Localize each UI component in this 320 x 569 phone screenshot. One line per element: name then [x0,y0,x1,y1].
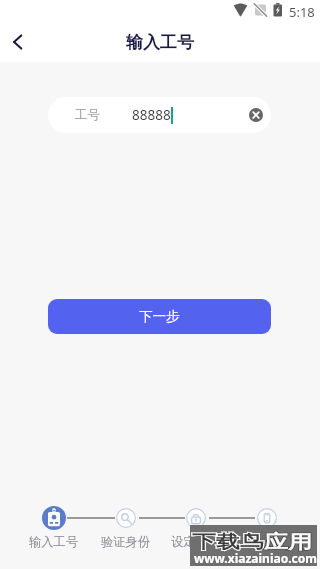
staticText: 应用 [264,531,312,553]
staticText: www.xiazainiao.com [194,550,317,566]
staticText: 工号 [75,107,100,123]
staticText: 88888 [132,106,171,124]
button[interactable]: Clear text [249,108,263,122]
button[interactable]: 工号 [48,97,271,133]
staticText: 下一步 [139,308,180,325]
staticText: 下载鸟 [192,531,264,553]
button[interactable]: 完成 [231,506,301,551]
staticText: 输入工号 [29,534,79,549]
button[interactable]: 输入工号 [19,506,89,551]
staticText: 验证身份 [101,534,151,549]
staticText: 设定密码 [171,534,221,549]
button[interactable]: 设定密码 [161,506,231,551]
staticText: 应用 [264,531,312,553]
staticText: 完成 [254,534,279,549]
button[interactable]: Back [4,29,30,55]
button[interactable]: 验证身份 [91,506,161,551]
staticText: 输入工号 [126,32,194,53]
button[interactable]: 下一步 [48,299,271,334]
staticText: 5:18 [289,3,315,21]
staticText: 下载鸟 [192,531,264,553]
